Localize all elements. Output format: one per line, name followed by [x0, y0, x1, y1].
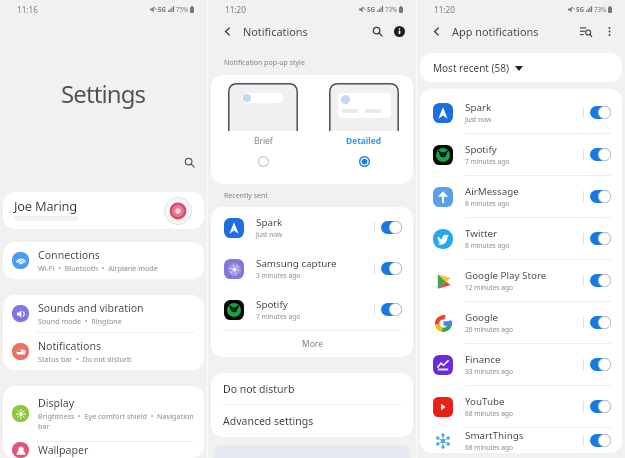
staticText: Samsung capture	[256, 257, 337, 270]
staticText: Advanced settings	[223, 414, 314, 428]
button[interactable]: Detailed style	[356, 153, 372, 169]
staticText: Google	[465, 311, 499, 324]
staticText: Connections	[38, 248, 100, 262]
button[interactable]: More options	[601, 23, 618, 40]
button[interactable]: Samsung capture	[211, 248, 413, 289]
staticText: Spotify	[256, 298, 288, 311]
button[interactable]: Spark	[211, 207, 413, 248]
button[interactable]: SmartThings	[420, 428, 622, 453]
staticText: 73%	[594, 5, 607, 13]
staticText: Notification pop-up style	[224, 58, 305, 68]
button[interactable]: Most recent (58)	[420, 53, 622, 82]
button[interactable]: Spark	[420, 92, 622, 133]
staticText: 7 minutes ago	[256, 312, 301, 321]
button[interactable]: Notification toggle, on	[590, 358, 611, 371]
staticText: Do not disturb	[223, 382, 295, 396]
staticText: Settings	[61, 77, 146, 110]
staticText: 5G	[576, 5, 585, 13]
button[interactable]: Wallpaper	[3, 442, 204, 458]
staticText: 68 minutes ago	[465, 443, 513, 452]
button[interactable]: Search settings	[180, 153, 199, 172]
button[interactable]: Joe Maring	[3, 192, 204, 229]
button[interactable]: Connections	[3, 242, 204, 279]
staticText: Finance	[465, 353, 501, 366]
staticText: 11:20	[434, 4, 455, 15]
staticText: 68 minutes ago	[465, 409, 513, 418]
button[interactable]: More	[211, 331, 413, 357]
staticText: 5G	[158, 5, 167, 13]
staticText: Brief	[254, 135, 273, 146]
staticText: Just now	[256, 230, 283, 239]
button[interactable]: Notification toggle, on	[590, 232, 611, 245]
staticText: App notifications	[452, 24, 539, 39]
staticText: 11:20	[225, 4, 246, 15]
button[interactable]: Notification toggle, on	[590, 190, 611, 203]
button[interactable]: Notification toggle, on	[381, 303, 402, 316]
staticText: Display	[38, 396, 75, 410]
staticText: 75%	[176, 5, 189, 13]
button[interactable]: AirMessage	[420, 176, 622, 217]
button[interactable]: Notification toggle, on	[381, 221, 402, 234]
staticText: Spark	[256, 216, 283, 229]
staticText: Twitter	[465, 227, 498, 240]
staticText: Spark	[465, 101, 492, 114]
staticText: 26 minutes ago	[465, 325, 513, 334]
button[interactable]: Profile picture	[164, 197, 192, 225]
staticText: 8 minutes ago	[465, 241, 510, 250]
staticText: Most recent (58)	[433, 61, 509, 75]
button[interactable]: Notification toggle, on	[381, 262, 402, 275]
button[interactable]: Spotify	[420, 134, 622, 175]
button[interactable]: Notification toggle, on	[590, 316, 611, 329]
staticText: Spotify	[465, 143, 497, 156]
button[interactable]: Do not disturb	[211, 373, 413, 404]
staticText: 5G	[367, 5, 376, 13]
button[interactable]: Twitter	[420, 218, 622, 259]
button[interactable]: Notification toggle, on	[590, 106, 611, 119]
staticText: Joe Maring	[14, 197, 77, 214]
staticText: Sounds and vibration	[38, 301, 144, 315]
staticText: AirMessage	[465, 185, 519, 198]
button[interactable]: Google Play Store	[420, 260, 622, 301]
button[interactable]: Notification toggle, on	[590, 148, 611, 161]
button[interactable]: Notifications	[3, 333, 204, 370]
staticText: Wallpaper	[38, 443, 89, 457]
button[interactable]: Notification toggle, on	[590, 400, 611, 413]
staticText: Wi-Fi • Bluetooth • Airplane mode	[38, 263, 158, 273]
staticText: Detailed	[346, 135, 382, 146]
button[interactable]: Back	[428, 23, 445, 40]
staticText: 3 minutes ago	[256, 271, 301, 280]
button[interactable]: Back	[219, 23, 236, 40]
staticText: 11:16	[17, 4, 38, 15]
staticText: Just now	[465, 115, 492, 124]
staticText: 73%	[385, 5, 398, 13]
button[interactable]: Advanced settings	[211, 405, 413, 437]
staticText: Brightness • Eye comfort shield • Naviga…	[38, 411, 199, 431]
button[interactable]: Finance	[420, 344, 622, 385]
button[interactable]: Brief preview	[228, 83, 298, 131]
staticText: Google Play Store	[465, 269, 547, 282]
staticText: SmartThings	[465, 429, 524, 442]
button[interactable]: YouTube	[420, 386, 622, 427]
button[interactable]: Sort and search	[577, 23, 594, 40]
staticText: 8 minutes ago	[465, 199, 510, 208]
button[interactable]: Notification toggle, on	[590, 274, 611, 287]
staticText: 7 minutes ago	[465, 157, 510, 166]
button[interactable]: Detailed preview	[329, 83, 399, 131]
button[interactable]: Google	[420, 302, 622, 343]
button[interactable]: Search	[369, 23, 386, 40]
staticText: 12 minutes ago	[465, 283, 513, 292]
staticText: Status bar • Do not disturb	[38, 354, 132, 364]
staticText: Sound mode • Ringtone	[38, 316, 122, 326]
staticText: Notifications	[243, 24, 308, 39]
staticText: More	[302, 338, 323, 350]
staticText: 33 minutes ago	[465, 367, 513, 376]
button[interactable]: Display	[3, 386, 204, 441]
button[interactable]: Spotify	[211, 289, 413, 330]
staticText: Recently sent	[224, 191, 268, 201]
button[interactable]: Brief style	[255, 153, 271, 169]
button[interactable]: Sounds and vibration	[3, 295, 204, 332]
staticText: Notifications	[38, 339, 102, 353]
button[interactable]: Notification toggle, on	[590, 434, 611, 447]
button[interactable]: More information	[391, 23, 408, 40]
staticText: YouTube	[465, 395, 505, 408]
